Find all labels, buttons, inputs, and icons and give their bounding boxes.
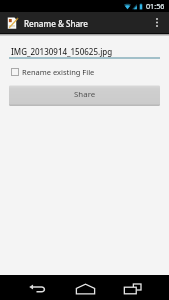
button[interactable]: Home — [69, 275, 101, 300]
staticText: IMG_20130914_150625.jpg — [11, 46, 113, 57]
button[interactable]: Rename existing File — [9, 67, 160, 77]
staticText: Share — [74, 89, 96, 100]
button[interactable]: Share — [9, 85, 160, 106]
button[interactable]: More options — [151, 12, 163, 33]
staticText: Rename existing File — [22, 67, 95, 77]
button[interactable]: Recents — [116, 275, 148, 300]
button[interactable]: IMG_20130914_150625.jpg — [9, 46, 160, 59]
staticText: 01:56 — [146, 1, 165, 11]
button[interactable]: Back — [21, 275, 53, 300]
staticText: Rename & Share — [24, 18, 89, 29]
